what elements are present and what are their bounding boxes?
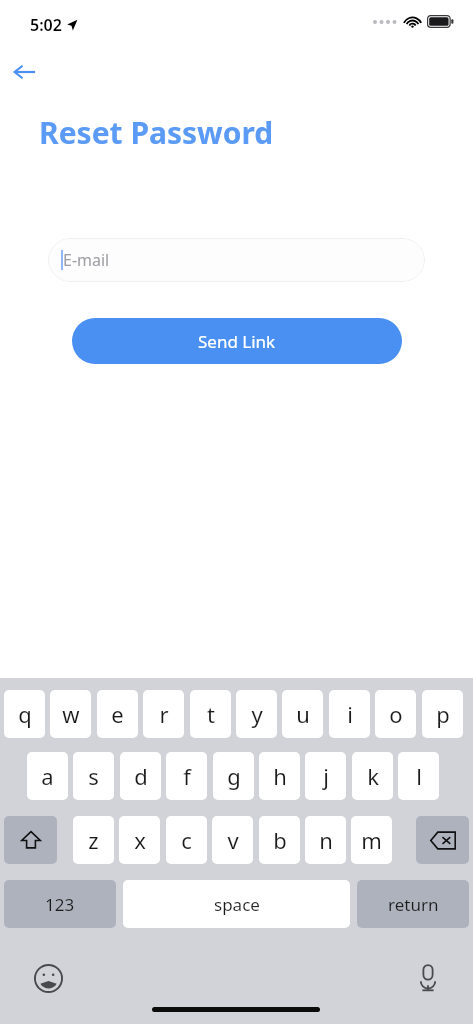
staticText: u xyxy=(296,699,310,729)
staticText: k xyxy=(367,761,379,791)
button[interactable]: Back xyxy=(8,55,42,89)
button[interactable]: Shift xyxy=(4,816,57,864)
staticText: g xyxy=(227,761,241,791)
staticText: i xyxy=(347,699,353,729)
button[interactable]: n xyxy=(305,816,346,864)
staticText: z xyxy=(88,825,99,855)
staticText: v xyxy=(227,825,239,855)
staticText: space xyxy=(214,893,260,916)
button[interactable]: b xyxy=(259,816,300,864)
button[interactable]: d xyxy=(120,752,161,800)
button[interactable]: v xyxy=(212,816,253,864)
staticText: a xyxy=(41,761,54,791)
button[interactable]: w xyxy=(50,690,91,738)
staticText: E-mail xyxy=(63,249,110,271)
staticText: 123 xyxy=(45,893,75,916)
button[interactable]: space xyxy=(123,880,350,928)
button[interactable]: a xyxy=(27,752,68,800)
staticText: x xyxy=(134,825,146,855)
button[interactable]: 123 xyxy=(4,880,116,928)
button[interactable]: o xyxy=(375,690,416,738)
staticText: o xyxy=(389,699,403,729)
staticText: y xyxy=(251,699,263,729)
button[interactable]: Send Link xyxy=(72,318,402,364)
button[interactable]: r xyxy=(143,690,184,738)
staticText: p xyxy=(436,699,450,729)
staticText: q xyxy=(18,699,32,729)
button[interactable]: l xyxy=(398,752,439,800)
button[interactable]: t xyxy=(190,690,231,738)
staticText: return xyxy=(388,893,439,916)
button[interactable]: i xyxy=(329,690,370,738)
staticText: s xyxy=(88,761,99,791)
staticText: r xyxy=(159,699,169,729)
staticText: b xyxy=(273,825,287,855)
staticText: w xyxy=(62,699,80,729)
staticText: h xyxy=(273,761,287,791)
button[interactable]: x xyxy=(119,816,160,864)
staticText: n xyxy=(319,825,333,855)
button[interactable]: f xyxy=(166,752,207,800)
button[interactable]: E-mail xyxy=(48,238,425,282)
staticText: m xyxy=(361,825,382,855)
button[interactable]: u xyxy=(282,690,323,738)
staticText: Reset Password xyxy=(39,112,274,153)
button[interactable]: j xyxy=(305,752,346,800)
staticText: d xyxy=(134,761,148,791)
button[interactable]: k xyxy=(352,752,393,800)
staticText: Send Link xyxy=(198,330,276,353)
button[interactable]: h xyxy=(259,752,300,800)
button[interactable]: s xyxy=(73,752,114,800)
button[interactable]: return xyxy=(357,880,469,928)
staticText: j xyxy=(323,761,329,791)
staticText: t xyxy=(207,699,215,729)
staticText: e xyxy=(111,699,124,729)
button[interactable]: p xyxy=(422,690,463,738)
staticText: f xyxy=(183,761,191,791)
button[interactable]: y xyxy=(236,690,277,738)
staticText: l xyxy=(416,761,422,791)
button[interactable]: q xyxy=(4,690,45,738)
staticText: 5:02 xyxy=(30,14,62,36)
staticText: c xyxy=(181,825,192,855)
button[interactable]: Voice input xyxy=(408,958,448,998)
button[interactable]: e xyxy=(97,690,138,738)
button[interactable]: Emoji keyboard xyxy=(28,958,68,998)
button[interactable]: c xyxy=(166,816,207,864)
button[interactable]: m xyxy=(351,816,392,864)
button[interactable]: z xyxy=(73,816,114,864)
button[interactable]: Backspace xyxy=(416,816,469,864)
button[interactable]: g xyxy=(213,752,254,800)
